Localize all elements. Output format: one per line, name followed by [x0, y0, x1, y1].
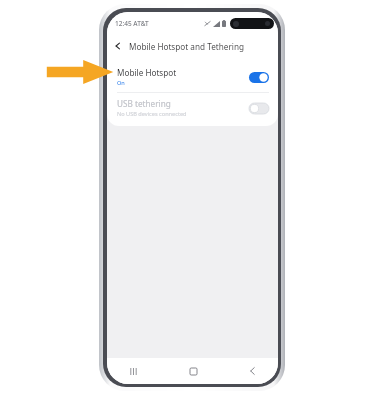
button[interactable]: Back [244, 363, 260, 379]
button[interactable]: Recent apps [125, 363, 141, 379]
button[interactable]: Mobile Hotspot [107, 62, 278, 92]
staticText: USB tethering [117, 98, 171, 109]
staticText: Mobile Hotspot and Tethering [129, 41, 244, 52]
staticText: Mobile Hotspot [117, 67, 177, 78]
button[interactable]: Toggle off [249, 103, 269, 114]
staticText: On [117, 79, 125, 87]
staticText: 12:45 AT&T [115, 19, 149, 28]
button[interactable]: Back [107, 35, 129, 57]
button[interactable]: USB tethering [107, 93, 278, 123]
button[interactable]: Toggle on [249, 72, 269, 83]
button[interactable]: Home [185, 363, 201, 379]
other: Pointer arrow highlighting Mobile Hotspo… [44, 59, 114, 85]
staticText: No USB devices connected [117, 110, 187, 118]
